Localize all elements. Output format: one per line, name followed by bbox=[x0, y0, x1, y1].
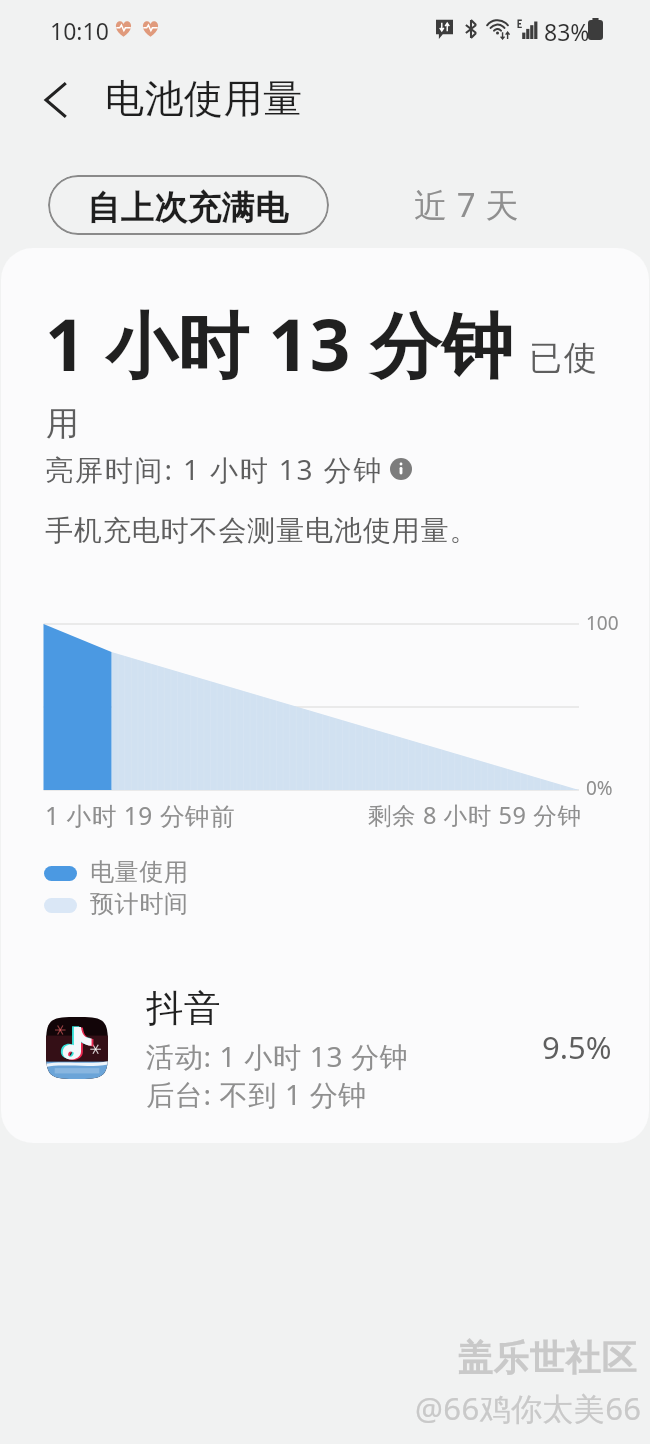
staticText: 电池使用量 bbox=[105, 74, 303, 123]
staticText: 抖音 bbox=[146, 985, 221, 1032]
staticText: 近 7 天 bbox=[414, 182, 520, 227]
staticText: 用 bbox=[46, 403, 79, 445]
staticText: @66鸡你太美66 bbox=[415, 1387, 642, 1429]
staticText: 后台: 不到 1 分钟 bbox=[146, 1075, 368, 1113]
button[interactable]: Back bbox=[28, 72, 84, 128]
button[interactable]: 近 7 天 bbox=[396, 175, 536, 235]
staticText: 预计时间 bbox=[90, 889, 189, 919]
staticText: 活动: 1 小时 13 分钟 bbox=[146, 1037, 409, 1075]
staticText: 83% bbox=[544, 16, 590, 47]
button[interactable]: 抖音 bbox=[1, 993, 649, 1128]
staticText: 9.5% bbox=[542, 1026, 612, 1068]
staticText: 剩余 8 小时 59 分钟 bbox=[368, 799, 582, 831]
staticText: 手机充电时不会测量电池使用量。 bbox=[45, 513, 479, 548]
staticText: 100 bbox=[586, 610, 619, 636]
staticText: 1 小时 13 分钟 bbox=[45, 295, 514, 392]
staticText: 盖乐世社区 bbox=[457, 1336, 637, 1380]
staticText: 自上次充满电 bbox=[87, 187, 289, 229]
staticText: 已使 bbox=[528, 337, 598, 379]
button[interactable]: 自上次充满电 bbox=[48, 175, 329, 235]
staticText: 10:10 bbox=[50, 15, 109, 46]
button[interactable]: Info bbox=[390, 458, 412, 480]
staticText: 1 小时 19 分钟前 bbox=[45, 799, 236, 832]
staticText: 电量使用 bbox=[90, 857, 189, 887]
staticText: 0% bbox=[586, 775, 613, 801]
staticText: 亮屏时间: 1 小时 13 分钟 bbox=[45, 450, 384, 488]
